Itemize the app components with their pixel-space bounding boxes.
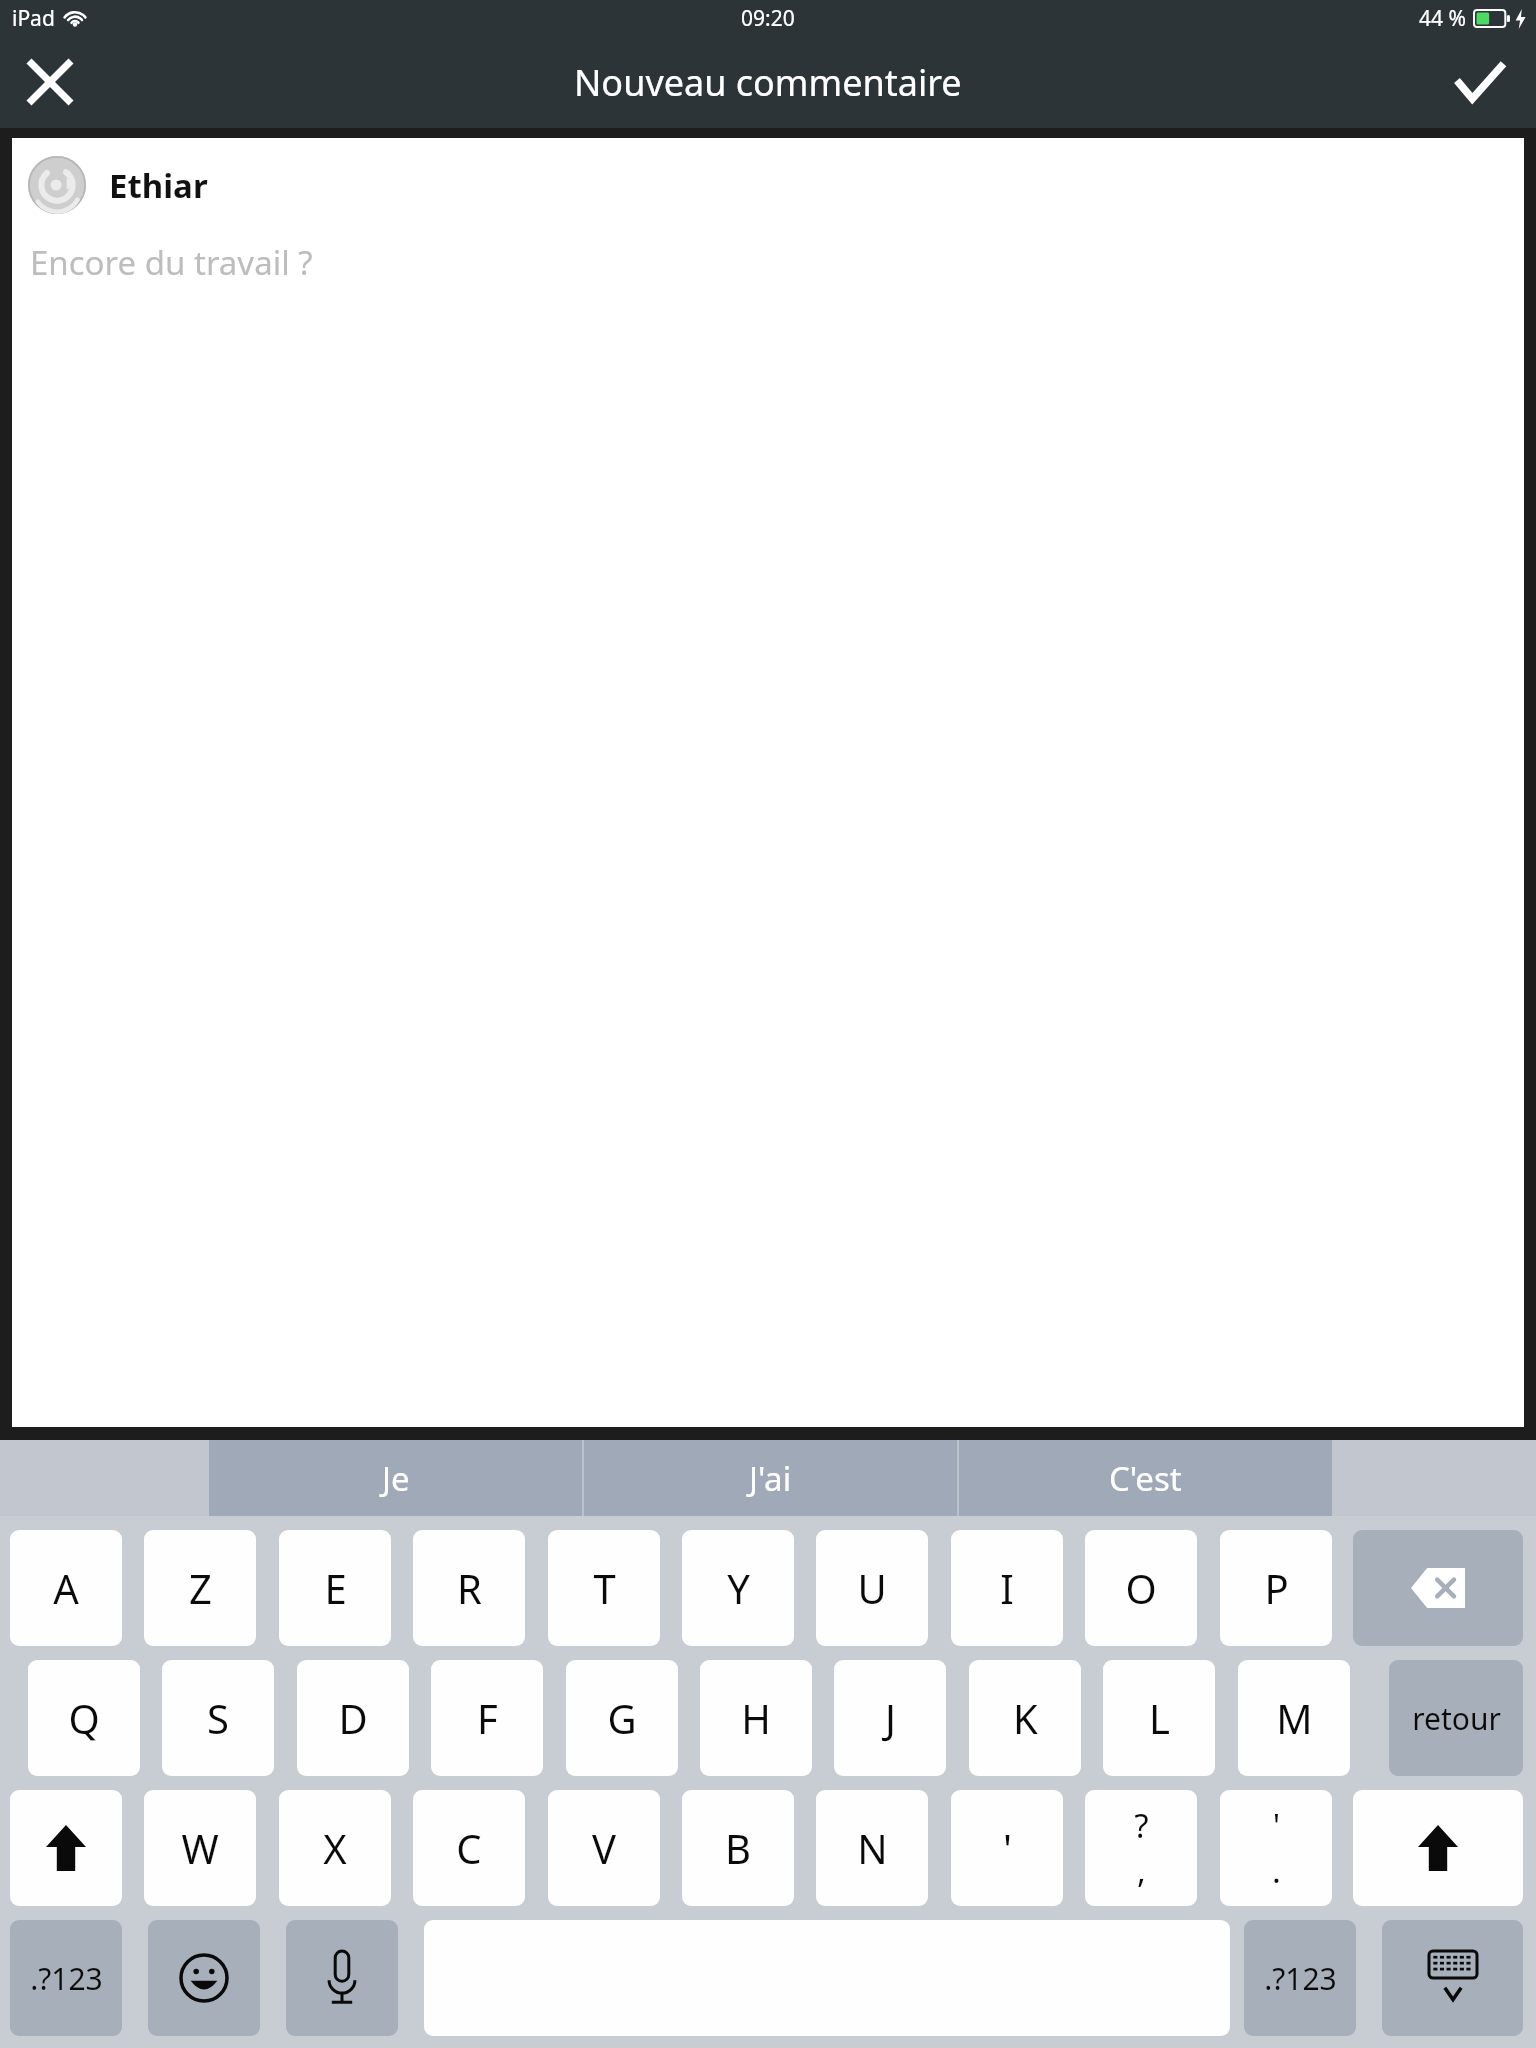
button[interactable]: D [297, 1660, 409, 1776]
staticText: ' . [1272, 1803, 1281, 1893]
staticText: C'est [1109, 1456, 1182, 1501]
button[interactable]: .?123 [1244, 1920, 1356, 2036]
button[interactable]: F [431, 1660, 543, 1776]
staticText: X [323, 1821, 347, 1875]
button[interactable]: Z [144, 1530, 256, 1646]
button[interactable]: G [566, 1660, 678, 1776]
button[interactable]: Je [209, 1440, 582, 1516]
button[interactable]: Q [28, 1660, 140, 1776]
staticText: D [338, 1691, 368, 1745]
staticText: Je [382, 1456, 410, 1501]
staticText: N [857, 1821, 888, 1875]
staticText: P [1264, 1561, 1289, 1615]
button[interactable]: Supprimer [1353, 1530, 1523, 1646]
button[interactable]: .?123 [10, 1920, 122, 2036]
button[interactable]: ' [951, 1790, 1063, 1906]
button[interactable]: X [279, 1790, 391, 1906]
staticText: A [53, 1561, 79, 1615]
staticText: I [1000, 1561, 1014, 1615]
button[interactable]: Majuscule [1353, 1790, 1523, 1906]
staticText: L [1149, 1691, 1170, 1745]
button[interactable]: J [834, 1660, 946, 1776]
button[interactable]: U [816, 1530, 928, 1646]
staticText: O [1125, 1561, 1157, 1615]
staticText: Y [727, 1561, 750, 1615]
staticText: M [1276, 1691, 1313, 1745]
staticText: J'ai [749, 1456, 792, 1501]
button[interactable]: J'ai [584, 1440, 957, 1516]
button[interactable]: I [951, 1530, 1063, 1646]
button[interactable]: ? , [1085, 1790, 1197, 1906]
staticText: ' [1003, 1821, 1012, 1875]
button[interactable]: M [1238, 1660, 1350, 1776]
button[interactable]: H [700, 1660, 812, 1776]
staticText: Q [68, 1691, 100, 1745]
staticText: C [456, 1821, 482, 1875]
button[interactable]: Masquer le clavier [1382, 1920, 1523, 2036]
staticText: Encore du travail ? [30, 240, 313, 285]
staticText: Ethiar [109, 163, 208, 208]
staticText: 09:20 [741, 4, 795, 33]
staticText: U [857, 1561, 887, 1615]
staticText: E [324, 1561, 347, 1615]
staticText: Z [189, 1561, 212, 1615]
staticText: iPad [12, 4, 55, 33]
staticText: J [885, 1691, 896, 1745]
button[interactable]: S [162, 1660, 274, 1776]
staticText: retour [1412, 1698, 1501, 1739]
button[interactable]: Retour [1389, 1660, 1523, 1776]
button[interactable]: C [413, 1790, 525, 1906]
button[interactable]: Fermer [0, 36, 100, 128]
staticText: .?123 [1264, 1958, 1337, 1999]
button[interactable]: Majuscule [10, 1790, 122, 1906]
button[interactable]: Valider [1424, 36, 1536, 128]
button[interactable]: O [1085, 1530, 1197, 1646]
staticText: V [592, 1821, 616, 1875]
button[interactable]: L [1103, 1660, 1215, 1776]
staticText: R [457, 1561, 482, 1615]
button[interactable]: E [279, 1530, 391, 1646]
staticText: T [593, 1561, 616, 1615]
button[interactable]: Emoji [148, 1920, 260, 2036]
button[interactable]: C'est [959, 1440, 1332, 1516]
button[interactable]: N [816, 1790, 928, 1906]
staticText: F [477, 1691, 498, 1745]
button[interactable]: ' . [1220, 1790, 1332, 1906]
staticText: K [1013, 1691, 1038, 1745]
staticText: Nouveau commentaire [574, 58, 962, 107]
staticText: S [207, 1691, 229, 1745]
staticText: W [181, 1821, 219, 1875]
staticText: H [741, 1691, 771, 1745]
staticText: B [725, 1821, 751, 1875]
button[interactable]: B [682, 1790, 794, 1906]
button[interactable]: A [10, 1530, 122, 1646]
staticText: G [607, 1691, 637, 1745]
button[interactable]: P [1220, 1530, 1332, 1646]
button[interactable]: K [969, 1660, 1081, 1776]
staticText: .?123 [30, 1958, 103, 1999]
button[interactable]: R [413, 1530, 525, 1646]
staticText: ? , [1134, 1803, 1149, 1893]
button[interactable]: T [548, 1530, 660, 1646]
button[interactable]: W [144, 1790, 256, 1906]
staticText: 44 % [1419, 4, 1466, 33]
button[interactable]: Y [682, 1530, 794, 1646]
button[interactable]: Dictée [286, 1920, 398, 2036]
button[interactable]: V [548, 1790, 660, 1906]
